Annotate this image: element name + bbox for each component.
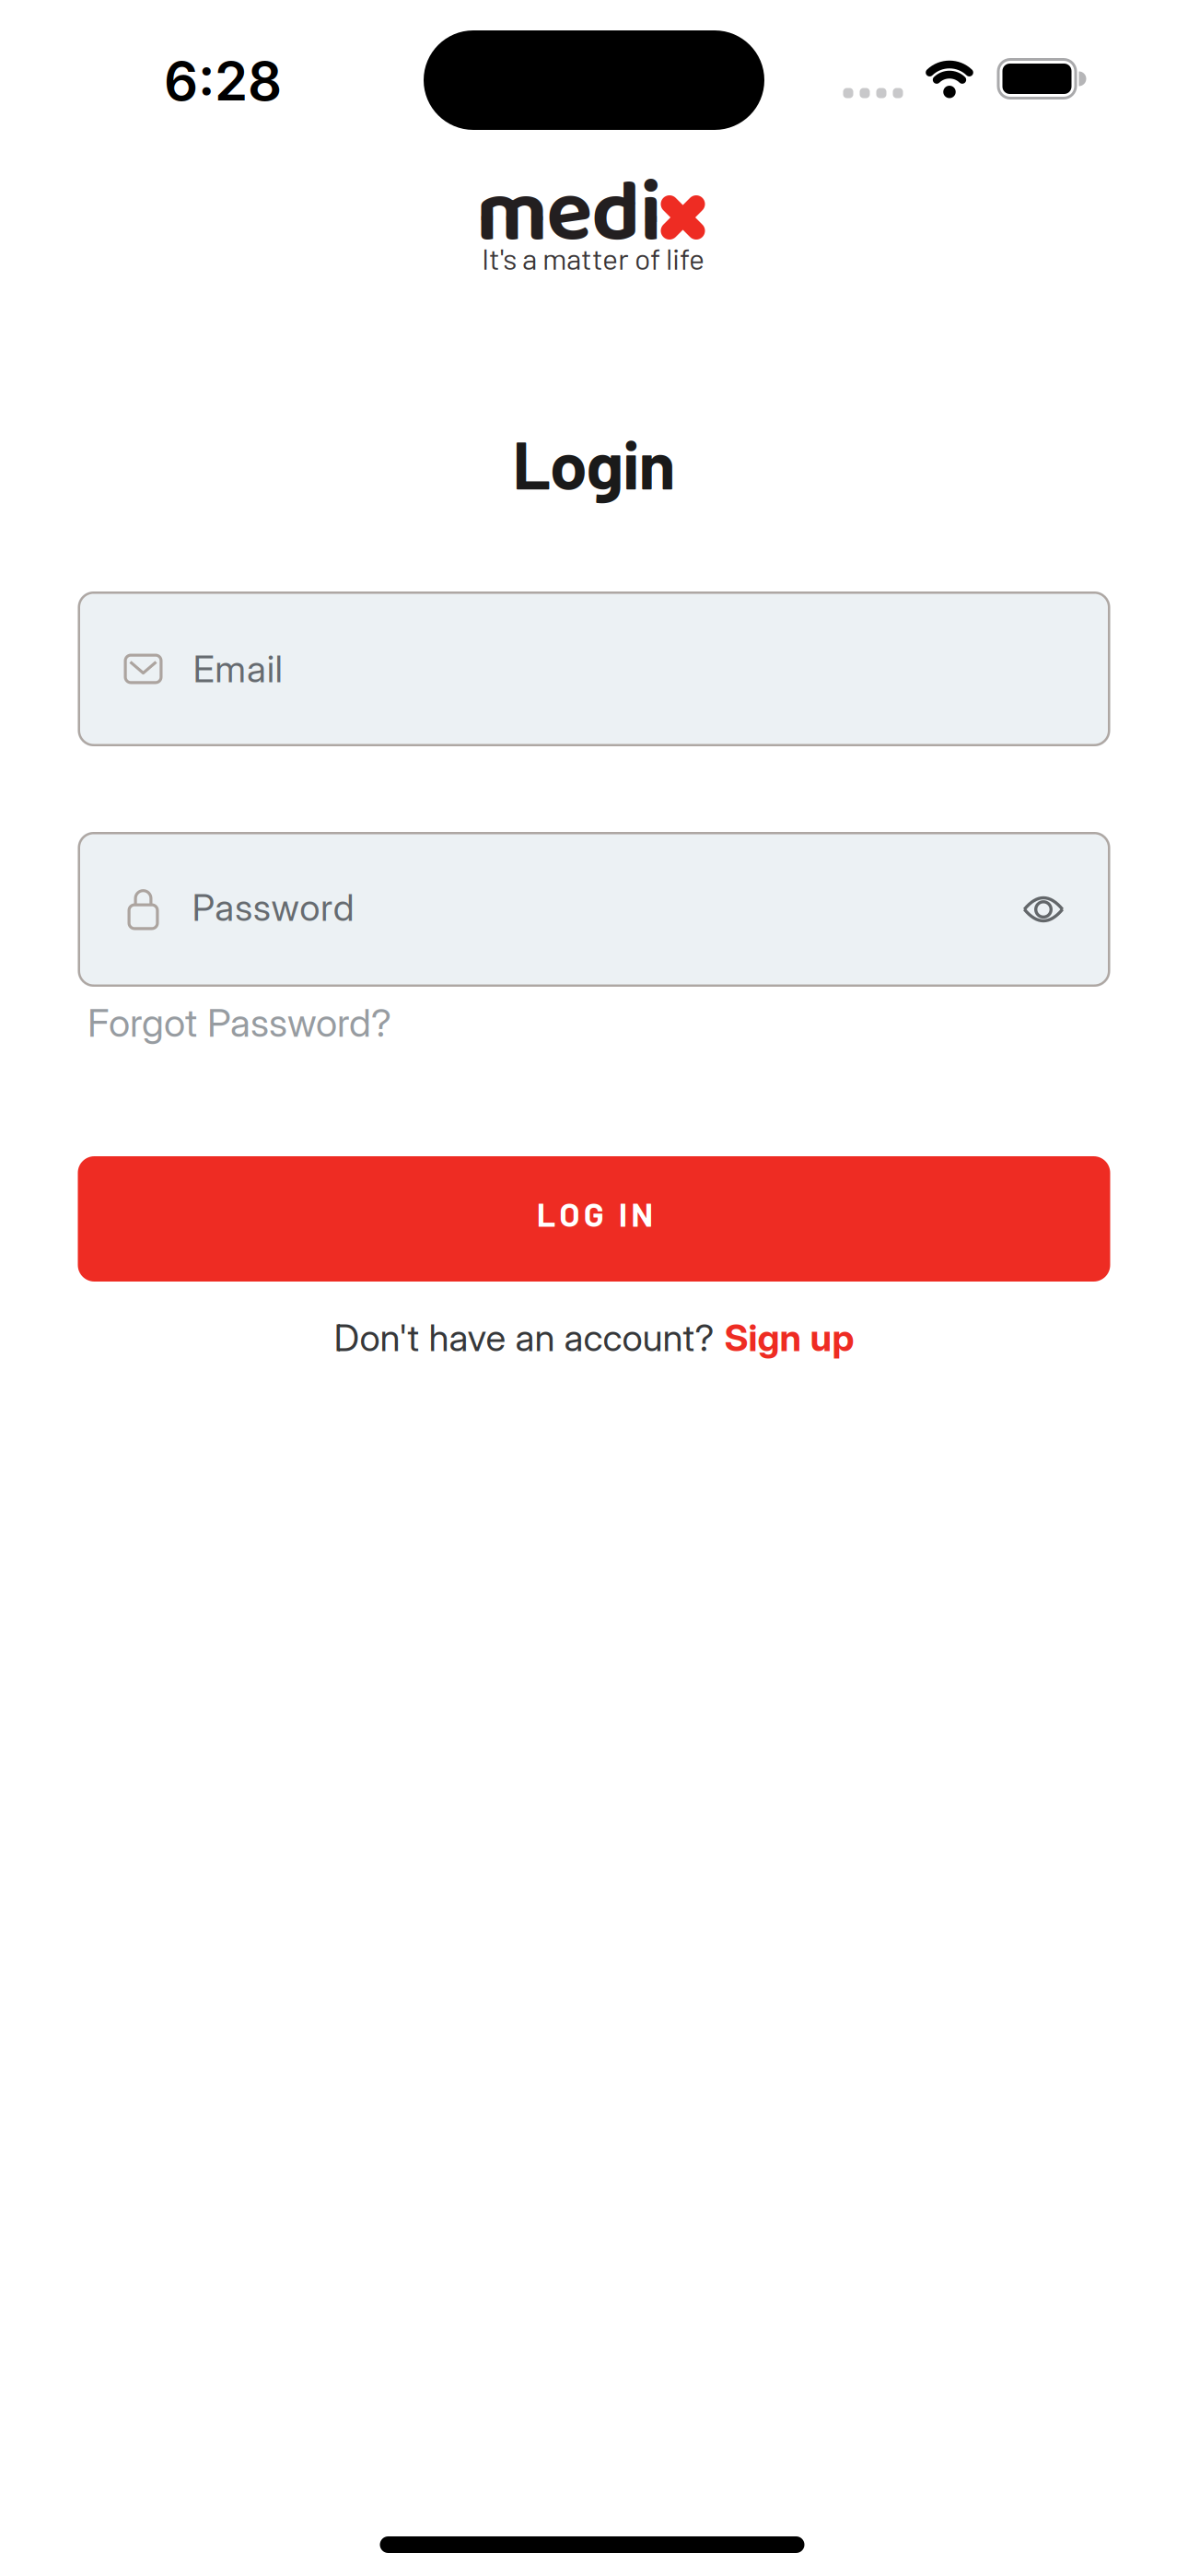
button[interactable]: Password <box>78 832 1110 987</box>
button[interactable]: Sign up <box>334 1315 854 1360</box>
staticText: Don't have an account? <box>334 1315 714 1360</box>
staticText: 6:28 <box>164 49 282 113</box>
staticText: It's a matter of life <box>482 240 705 276</box>
staticText: Sign up <box>724 1315 854 1360</box>
staticText: medi <box>476 145 662 284</box>
staticText: LOG IN <box>537 1193 653 1233</box>
button[interactable]: Show password <box>1023 896 1064 923</box>
staticText: Login <box>512 422 676 503</box>
button[interactable]: LOG IN <box>78 1156 1110 1282</box>
button[interactable]: Email <box>78 591 1110 746</box>
staticText: Forgot Password? <box>87 999 391 1046</box>
staticText: Email <box>193 647 282 691</box>
staticText: Password <box>192 885 354 930</box>
button[interactable]: Forgot Password? <box>87 996 566 1049</box>
